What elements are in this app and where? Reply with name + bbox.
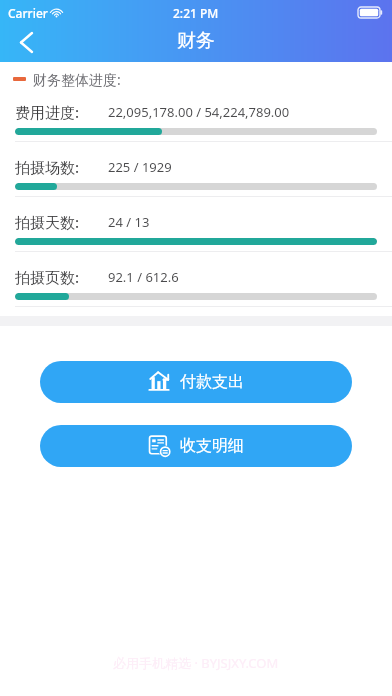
staticText: Carrier [8, 5, 48, 21]
staticText: 财务整体进度: [33, 70, 121, 89]
button[interactable]: 收支明细 [40, 425, 352, 467]
button[interactable]: 费用进度: [0, 96, 392, 151]
staticText: 拍摄天数: [15, 212, 108, 232]
staticText: 必用手机精选 · BYJSJXY.COM [113, 654, 279, 672]
staticText: 24 / 13 [108, 213, 150, 231]
button[interactable]: 拍摄页数: [0, 261, 392, 316]
staticText: 92.1 / 612.6 [108, 268, 179, 286]
staticText: 付款支出 [180, 372, 244, 392]
staticText: 拍摄页数: [15, 267, 108, 287]
staticText: 费用进度: [15, 102, 108, 122]
button[interactable]: Back [0, 22, 52, 62]
button[interactable]: 付款支出 [40, 361, 352, 403]
staticText: 22,095,178.00 / 54,224,789.00 [108, 103, 290, 121]
staticText: 收支明细 [180, 436, 244, 456]
staticText: 2:21 PM [173, 5, 219, 21]
button[interactable]: 拍摄天数: [0, 206, 392, 261]
staticText: 225 / 1929 [108, 158, 172, 176]
staticText: 财务 [177, 29, 215, 53]
staticText: 拍摄场数: [15, 157, 108, 177]
button[interactable]: 拍摄场数: [0, 151, 392, 206]
